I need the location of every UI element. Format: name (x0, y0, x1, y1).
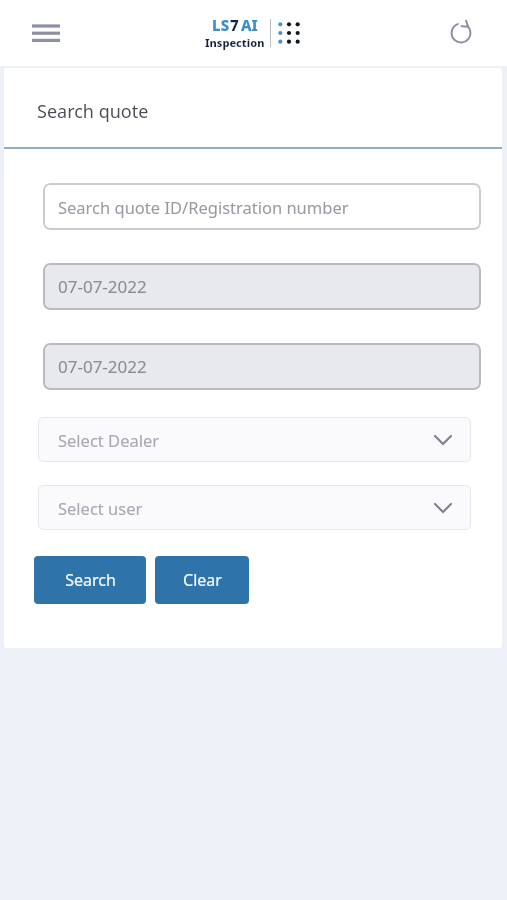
staticText: AI (241, 15, 258, 35)
staticText: Select user (58, 497, 143, 519)
button[interactable]: Select user (38, 485, 471, 530)
staticText: 7 (230, 15, 239, 35)
button[interactable]: Menu (24, 11, 68, 55)
button[interactable]: Clear (155, 556, 249, 604)
button[interactable]: Select Dealer (38, 417, 471, 462)
button[interactable]: 07-07-2022 (43, 263, 481, 310)
staticText: Select Dealer (58, 429, 160, 451)
staticText: Search (65, 569, 116, 591)
button[interactable]: Refresh (441, 13, 481, 53)
staticText: Search quote ID/Registration number (58, 196, 349, 218)
button[interactable]: Search quote ID/Registration number (43, 183, 481, 230)
staticText: Inspection (205, 35, 265, 50)
staticText: LS (212, 15, 230, 35)
staticText: Clear (183, 569, 222, 591)
button[interactable]: Search (34, 556, 146, 604)
staticText: Search quote (37, 99, 149, 124)
button[interactable]: 07-07-2022 (43, 343, 481, 390)
staticText: 07-07-2022 (58, 275, 147, 298)
staticText: 07-07-2022 (58, 355, 147, 378)
